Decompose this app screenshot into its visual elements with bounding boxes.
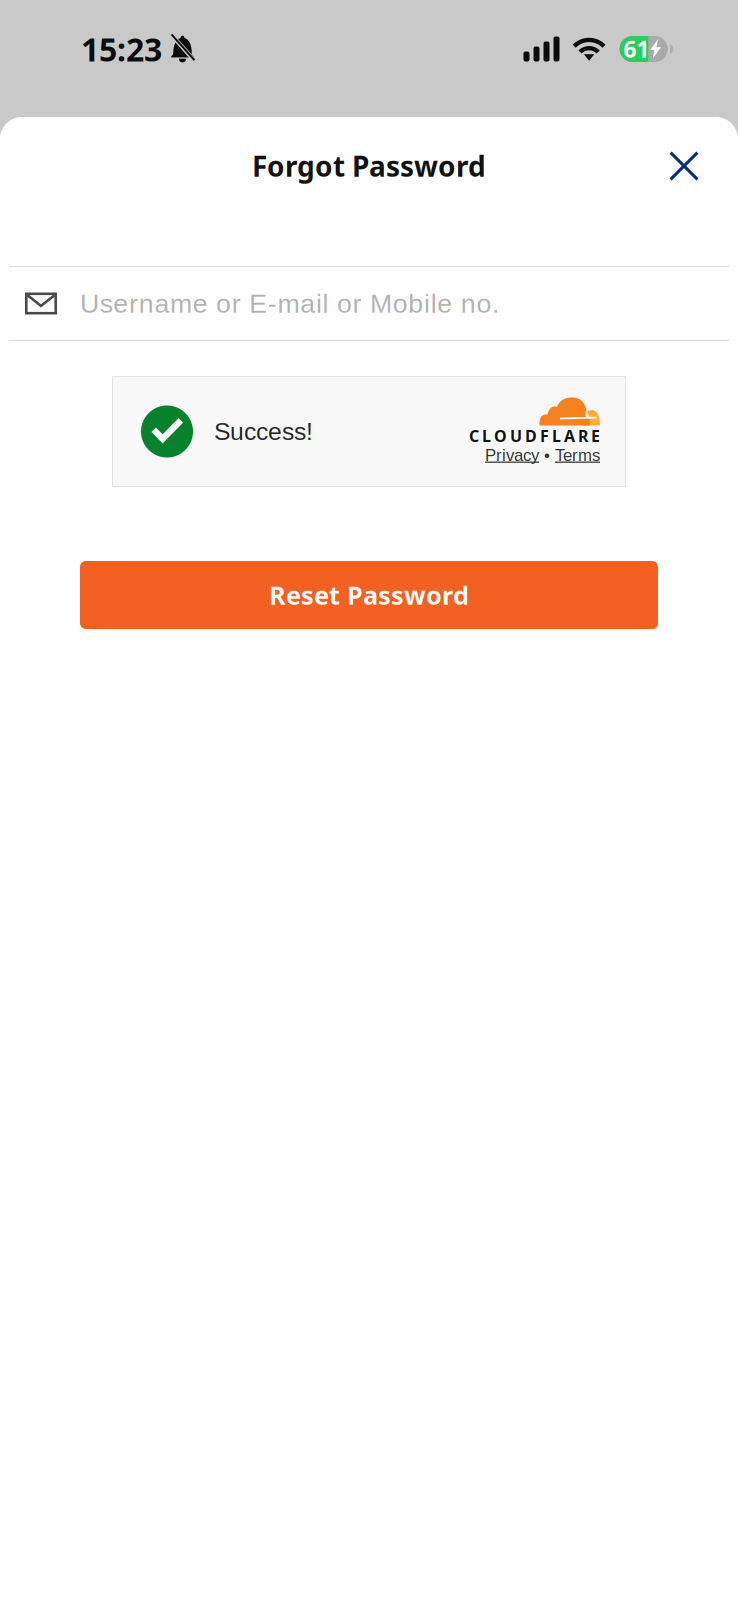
- staticText: 15:23: [81, 27, 162, 71]
- staticText: Forgot Password: [252, 147, 486, 185]
- button[interactable]: Privacy: [485, 446, 539, 465]
- staticText: 61: [623, 34, 649, 64]
- staticText: Reset Password: [269, 578, 469, 612]
- staticText: •: [539, 446, 555, 465]
- staticText: Success!: [214, 418, 313, 445]
- staticText: Username or E-mail or Mobile no.: [80, 289, 499, 318]
- button[interactable]: Close: [657, 139, 738, 193]
- staticText: CLOUDFLARE: [469, 425, 600, 447]
- button[interactable]: Terms: [555, 446, 600, 465]
- button[interactable]: Reset Password: [80, 561, 658, 629]
- staticText: Privacy: [485, 446, 539, 465]
- button[interactable]: Username or E-mail or Mobile no.: [0, 267, 738, 340]
- staticText: Terms: [555, 446, 600, 465]
